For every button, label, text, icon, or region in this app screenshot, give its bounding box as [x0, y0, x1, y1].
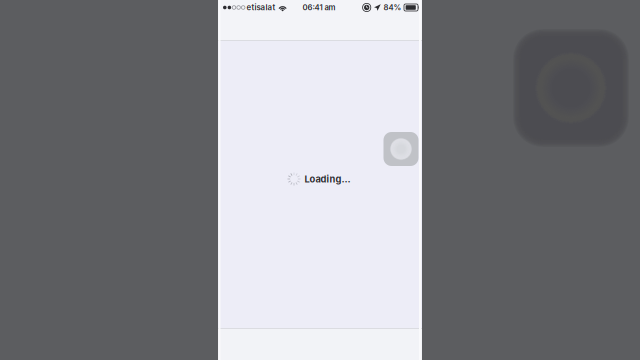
staticText: 84%	[383, 3, 401, 12]
staticText: etisalat	[246, 3, 275, 12]
staticText: 06:41 am	[302, 3, 335, 12]
button[interactable]: AssistiveTouch	[383, 132, 418, 166]
staticText: Loading...	[304, 173, 350, 185]
